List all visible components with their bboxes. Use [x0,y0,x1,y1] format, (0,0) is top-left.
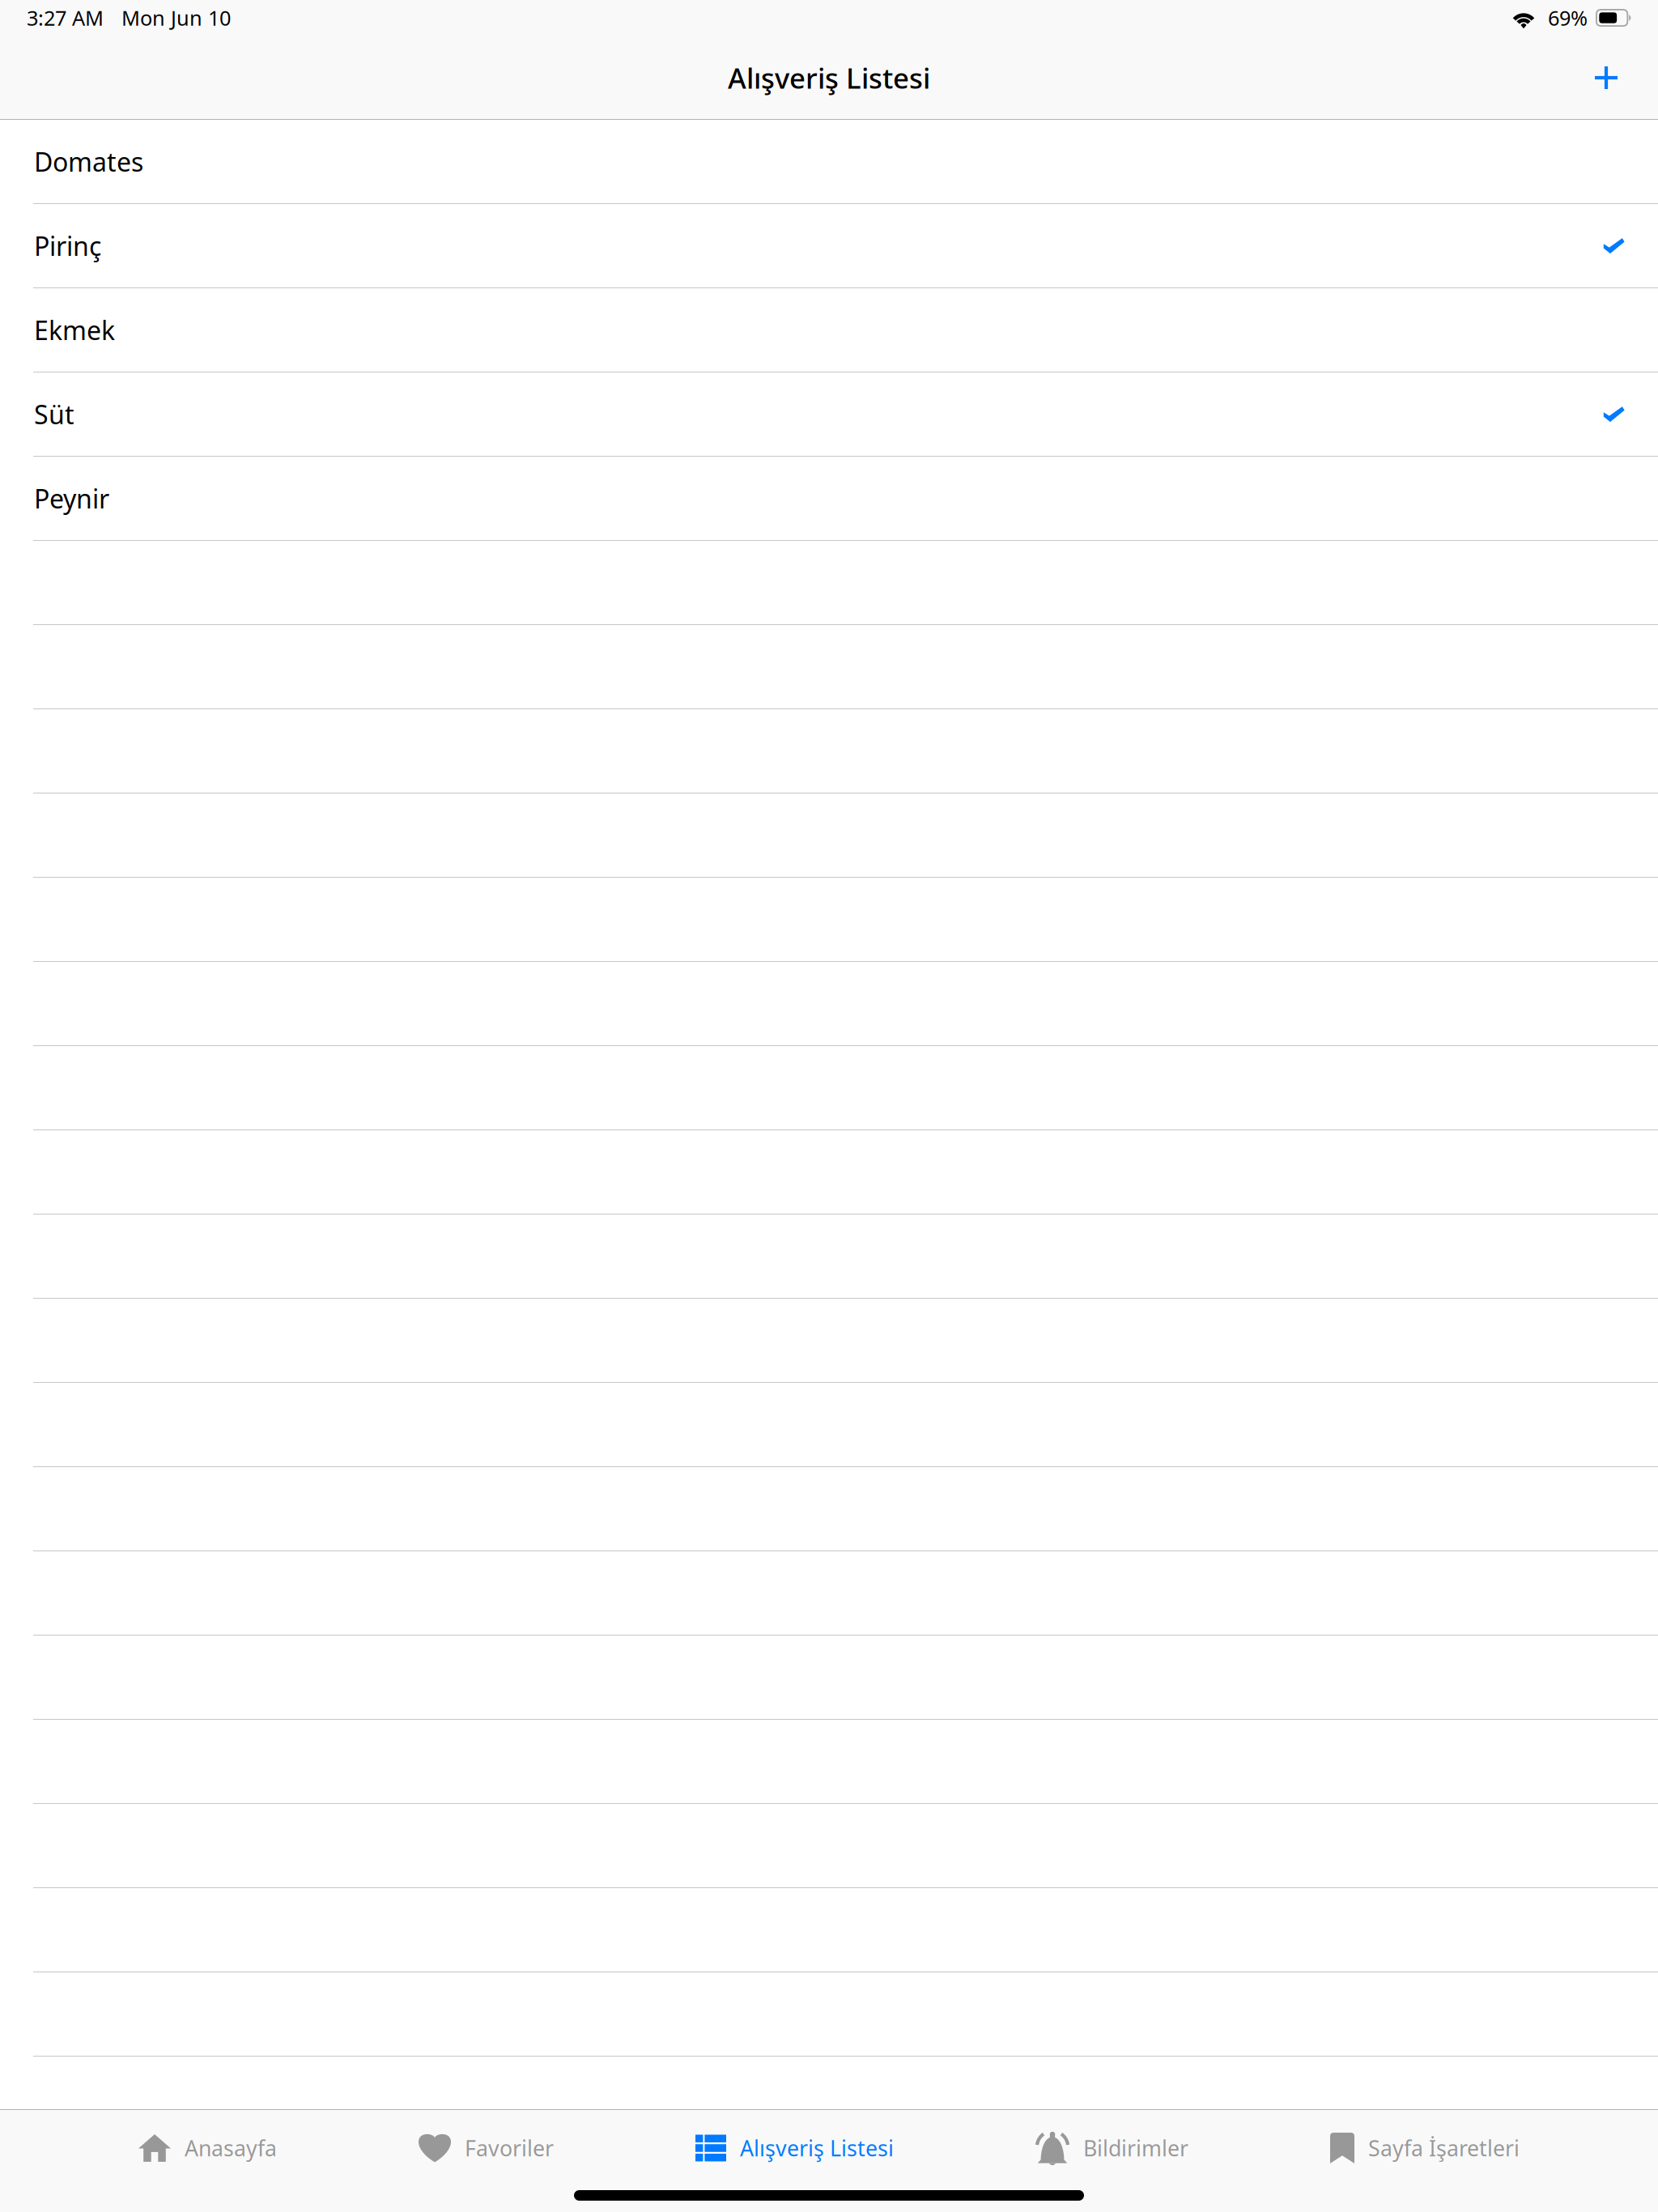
staticText: Mon Jun 10 [121,4,231,31]
staticText: 3:27 AM [27,4,104,31]
staticText: Anasayfa [185,2134,277,2162]
button[interactable]: Pirinç [0,204,1658,288]
staticText: Sayfa İşaretleri [1368,2134,1520,2162]
staticText: 69% [1548,4,1588,31]
button[interactable]: Ekmek [0,288,1658,372]
staticText: Alışveriş Listesi [740,2134,894,2162]
staticText: Ekmek [34,313,115,347]
staticText: Domates [34,144,143,179]
button[interactable]: Favoriler [419,2110,554,2186]
button[interactable]: Sayfa İşaretleri [1330,2110,1520,2186]
button[interactable]: Domates [0,120,1658,204]
staticText: Peynir [34,481,109,516]
button[interactable]: Alışveriş Listesi [695,2110,894,2186]
staticText: Favoriler [465,2134,554,2162]
staticText: Süt [34,397,74,431]
staticText: Bildirimler [1083,2134,1188,2162]
button[interactable]: Bildirimler [1035,2110,1188,2186]
button[interactable]: Peynir [0,457,1658,541]
staticText: Pirinç [34,229,101,263]
button[interactable]: Süt [0,372,1658,457]
button[interactable]: Add item [1559,40,1658,115]
button[interactable]: Anasayfa [138,2110,277,2186]
staticText: Alışveriş Listesi [728,59,930,96]
